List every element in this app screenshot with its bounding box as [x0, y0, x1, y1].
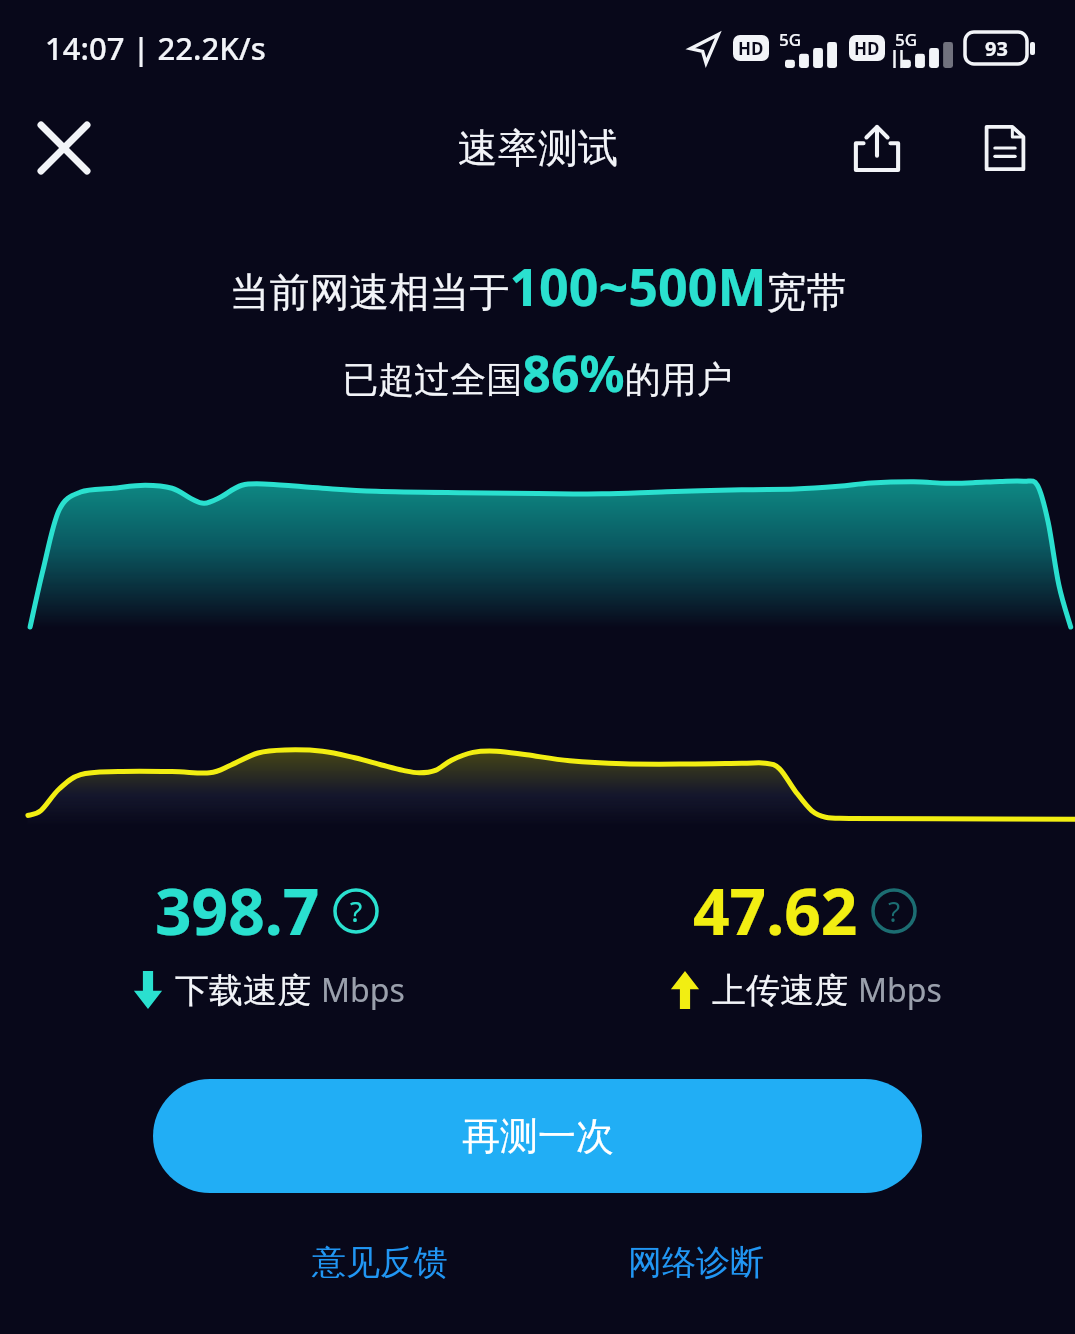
staticText: HD: [854, 37, 880, 60]
staticText: 当前网速相当于100~500M宽带: [229, 250, 847, 321]
staticText: 上传速度: [712, 969, 848, 1012]
button[interactable]: 再测一次: [153, 1079, 922, 1193]
button[interactable]: Help: [330, 885, 382, 937]
staticText: Mbps: [858, 968, 942, 1012]
staticText: 已超过全国86%的用户: [342, 339, 733, 407]
staticText: 14:07 | 22.2K/s: [45, 27, 266, 69]
staticText: 5G: [895, 28, 918, 51]
button[interactable]: Report: [965, 108, 1045, 188]
button[interactable]: Help: [868, 885, 920, 937]
staticText: HD: [738, 37, 764, 60]
staticText: 网络诊断: [628, 1241, 764, 1284]
staticText: 398.7: [155, 867, 320, 954]
button[interactable]: Close: [24, 108, 104, 188]
staticText: 下载速度: [175, 969, 311, 1012]
staticText: ?: [350, 892, 363, 930]
button[interactable]: Share: [837, 108, 917, 188]
staticText: 速率测试: [458, 123, 618, 173]
button[interactable]: 网络诊断: [608, 1231, 784, 1294]
button[interactable]: 意见反馈: [292, 1231, 468, 1294]
staticText: ?: [888, 892, 901, 930]
staticText: 93: [985, 35, 1008, 62]
staticText: 5G: [779, 28, 802, 51]
staticText: 再测一次: [462, 1112, 614, 1160]
staticText: Mbps: [321, 968, 405, 1012]
staticText: 意见反馈: [312, 1241, 448, 1284]
staticText: 47.62: [693, 867, 858, 954]
